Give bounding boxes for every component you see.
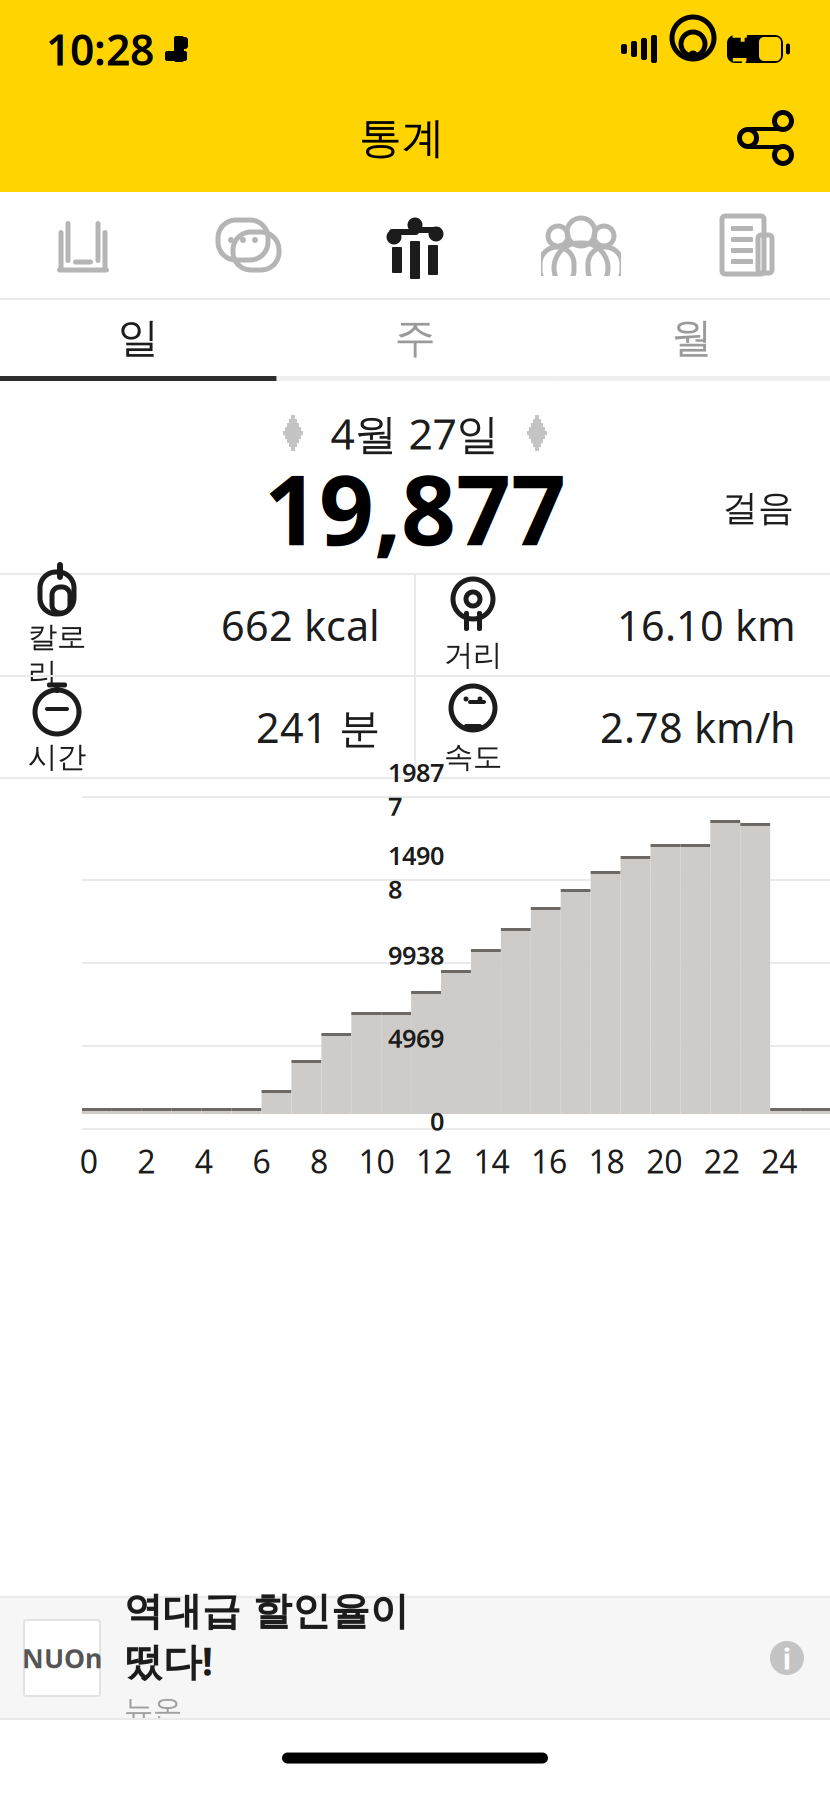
staticText: 2.78 km/h bbox=[600, 700, 796, 754]
staticText: 14908 bbox=[388, 838, 444, 906]
staticText: 월 bbox=[671, 313, 712, 363]
staticText: 4 bbox=[195, 1140, 213, 1182]
button[interactable]: 공유 bbox=[728, 100, 804, 176]
staticText: 18 bbox=[589, 1140, 625, 1182]
staticText: 19,877 bbox=[264, 444, 566, 572]
button[interactable]: 채팅 bbox=[166, 192, 332, 298]
staticText: 22 bbox=[704, 1140, 740, 1182]
button[interactable]: 이전 날짜 bbox=[261, 405, 325, 461]
staticText: 241 분 bbox=[256, 700, 380, 754]
staticText: 2 bbox=[137, 1140, 155, 1182]
staticText: 19877 bbox=[388, 755, 444, 823]
staticText: 16 bbox=[531, 1140, 567, 1182]
staticText: 10:28 bbox=[46, 21, 154, 77]
staticText: 24 bbox=[761, 1140, 797, 1182]
staticText: 47 bbox=[732, 14, 747, 84]
staticText: 8 bbox=[310, 1140, 328, 1182]
staticText: 주 bbox=[394, 313, 435, 363]
staticText: 시간 bbox=[28, 739, 86, 775]
button[interactable]: 일 bbox=[0, 300, 277, 376]
staticText: 뉴온 bbox=[124, 1692, 182, 1728]
staticText: 16.10 km bbox=[617, 598, 796, 652]
button[interactable]: 친구 bbox=[498, 192, 664, 298]
staticText: 0 bbox=[80, 1140, 98, 1182]
staticText: 역대급 할인율이 떴다! bbox=[124, 1588, 409, 1686]
staticText: 662 kcal bbox=[221, 598, 380, 652]
staticText: 12 bbox=[416, 1140, 452, 1182]
button[interactable]: 다음 날짜 bbox=[505, 405, 569, 461]
button[interactable]: 통계 bbox=[332, 192, 498, 298]
staticText: 일 bbox=[118, 313, 159, 363]
staticText: 14 bbox=[473, 1140, 509, 1182]
staticText: 거리 bbox=[444, 637, 502, 673]
staticText: 0 bbox=[430, 1104, 444, 1138]
staticText: NUOn bbox=[22, 1640, 102, 1676]
button[interactable]: 홈 bbox=[0, 192, 166, 298]
staticText: 6 bbox=[252, 1140, 270, 1182]
staticText: 20 bbox=[646, 1140, 682, 1182]
button[interactable]: 주 bbox=[277, 300, 553, 376]
button[interactable]: 뉴스 bbox=[664, 192, 830, 298]
staticText: 10 bbox=[358, 1140, 394, 1182]
staticText: i bbox=[782, 1638, 791, 1677]
staticText: 속도 bbox=[444, 739, 502, 775]
staticText: 4월 27일 bbox=[330, 405, 499, 461]
button[interactable]: NUOn bbox=[0, 1598, 830, 1718]
staticText: 걸음 bbox=[722, 486, 794, 530]
staticText: 4969 bbox=[388, 1021, 444, 1055]
staticText: 칼로리 bbox=[28, 619, 86, 691]
staticText: 통계 bbox=[359, 112, 445, 164]
staticText: 9938 bbox=[388, 938, 444, 972]
button[interactable]: 월 bbox=[553, 300, 830, 376]
